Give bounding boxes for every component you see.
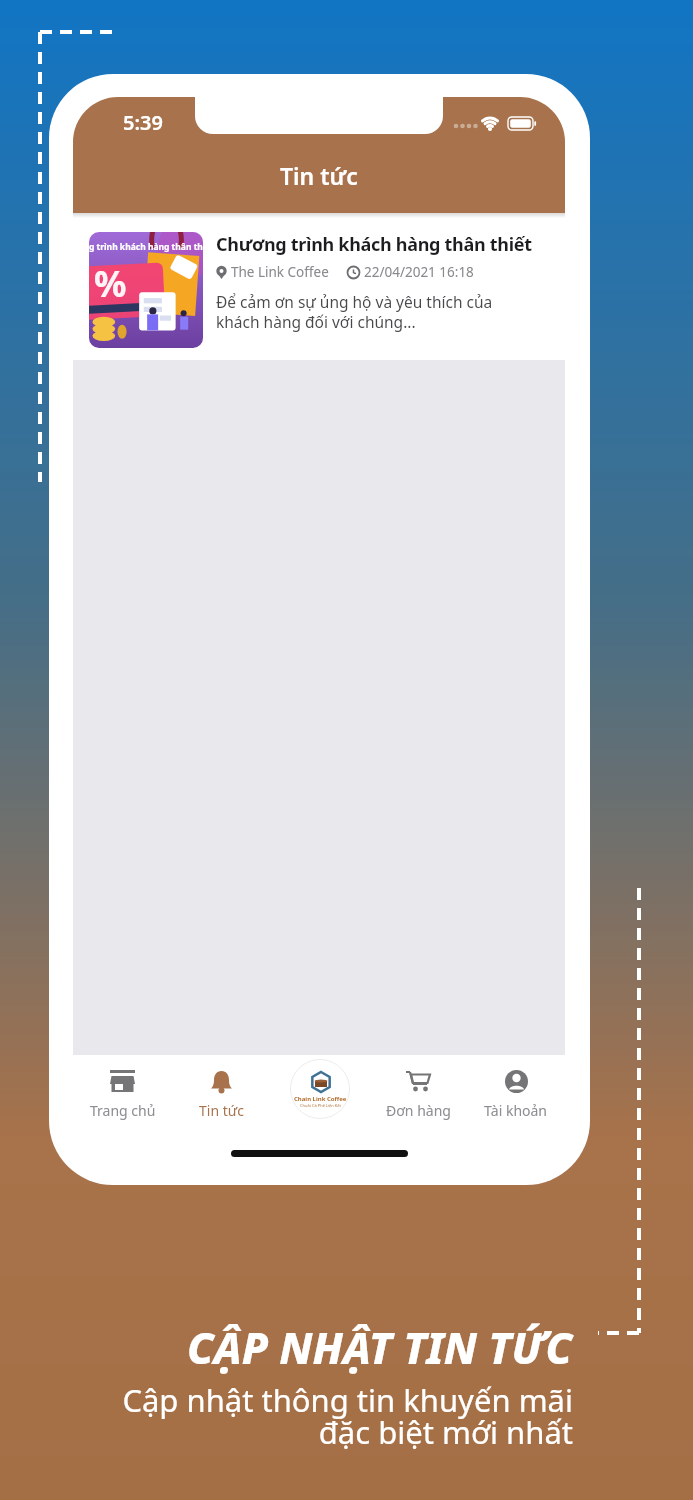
staticText: Chuỗi Cà Phê Liên Kết (300, 1103, 342, 1108)
staticText: g trình khách hàng thân thiết (89, 241, 203, 253)
staticText: Chain Link Coffee (294, 1095, 347, 1103)
button[interactable]: Tin tức (172, 1055, 271, 1123)
button[interactable]: Tài khoản (467, 1055, 565, 1123)
staticText: Để cảm ơn sự ủng hộ và yêu thích của khá… (216, 291, 493, 333)
staticText: Tin tức (199, 1101, 244, 1120)
button[interactable]: Chain Link Coffee (290, 1059, 350, 1119)
button[interactable]: Trang chủ (73, 1055, 172, 1123)
staticText: CẬP NHẬT TIN TỨC (187, 1318, 573, 1377)
staticText: 22/04/2021 16:18 (364, 263, 474, 281)
staticText: 5:39 (123, 109, 163, 136)
staticText: Chương trình khách hàng thân thiết (216, 232, 532, 257)
button[interactable]: g trình khách hàng thân thiết (73, 213, 565, 360)
staticText: Tài khoản (484, 1101, 548, 1120)
staticText: Trang chủ (90, 1101, 156, 1120)
staticText: Đơn hàng (386, 1101, 451, 1120)
staticText: The Link Coffee (231, 263, 329, 281)
button[interactable]: Đơn hàng (369, 1055, 467, 1123)
staticText: Tin tức (280, 160, 358, 191)
staticText: % (94, 259, 127, 308)
staticText: Cập nhật thông tin khuyến mãi đặc biệt m… (122, 1379, 573, 1453)
